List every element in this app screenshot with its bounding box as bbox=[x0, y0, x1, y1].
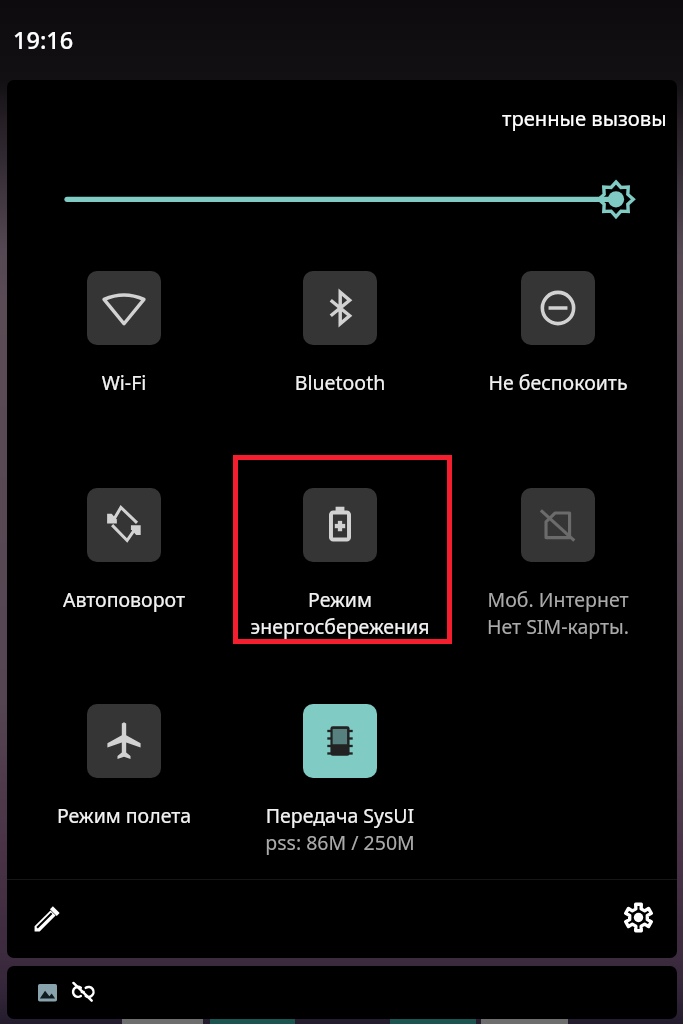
button[interactable]: Передача SysUI bbox=[232, 704, 448, 856]
staticText: 19:16 bbox=[13, 24, 74, 56]
button[interactable]: Wi-Fi bbox=[16, 271, 232, 396]
button[interactable]: Settings bbox=[613, 892, 663, 942]
staticText: Bluetooth bbox=[232, 369, 448, 396]
button[interactable]: Brightness bbox=[7, 174, 677, 224]
staticText: Автоповорот bbox=[16, 586, 232, 613]
button[interactable]: Edit tiles bbox=[22, 893, 72, 943]
staticText: Передача SysUI bbox=[232, 802, 448, 829]
button[interactable]: Screenshot bbox=[34, 980, 60, 1006]
button[interactable]: Режим полета bbox=[16, 704, 232, 829]
staticText: Wi-Fi bbox=[16, 369, 232, 396]
button[interactable]: Моб. Интернет bbox=[450, 488, 666, 640]
button[interactable]: Link off bbox=[68, 978, 97, 1007]
button[interactable]: Bluetooth bbox=[232, 271, 448, 396]
staticText: Режим энергосбережения bbox=[232, 586, 448, 640]
staticText: Моб. Интернет bbox=[450, 586, 666, 613]
staticText: pss: 86M / 250M bbox=[232, 829, 448, 856]
staticText: Режим полета bbox=[16, 802, 232, 829]
staticText: Нет SIM-карты. bbox=[450, 613, 666, 640]
button[interactable]: Не беспокоить bbox=[450, 271, 666, 396]
button[interactable]: Режим энергосбережения bbox=[232, 488, 448, 640]
button[interactable]: Автоповорот bbox=[16, 488, 232, 613]
staticText: Не беспокоить bbox=[450, 369, 666, 396]
staticText: тренные вызовы bbox=[502, 104, 667, 132]
